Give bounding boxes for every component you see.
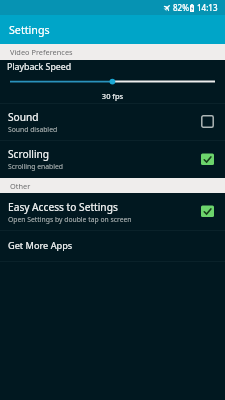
staticText: Open Settings by double tap on screen [8,215,132,224]
staticText: 82% [173,2,189,13]
button[interactable]: Easy Access to Settings [0,193,225,230]
staticText: 14:13 [197,2,218,13]
staticText: Playback Speed [7,61,72,73]
button[interactable]: Scrolling [0,140,225,178]
staticText: 30 fps [0,91,225,101]
other: Airplane mode [164,4,171,11]
staticText: Sound disabled [8,125,58,134]
staticText: Scrolling [8,147,50,161]
button[interactable]: Get More Apps [0,230,225,261]
staticText: Video Preferences [10,47,73,57]
staticText: Get More Apps [8,239,73,252]
staticText: Other [10,181,31,191]
staticText: Sound [8,110,39,124]
staticText: Easy Access to Settings [8,200,118,214]
staticText: Settings [9,23,50,38]
staticText: Scrolling enabled [8,162,63,171]
button[interactable]: Sound [0,103,225,140]
other: Battery [190,4,194,12]
button[interactable]: Playback Speed [0,60,225,103]
